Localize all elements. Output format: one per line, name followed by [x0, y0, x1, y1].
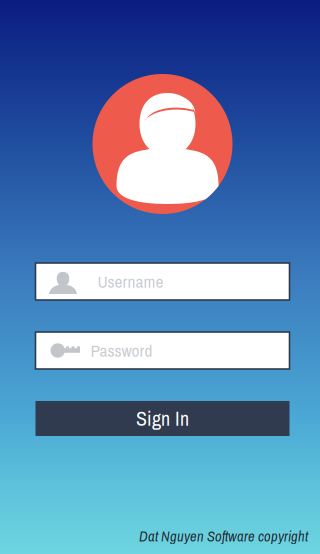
- staticText: Username: [97, 270, 163, 293]
- button[interactable]: Sign In: [35, 401, 289, 436]
- staticText: Password: [90, 339, 152, 362]
- staticText: Sign In: [136, 405, 189, 432]
- staticText: Dat Nguyen Software copyright: [139, 526, 308, 546]
